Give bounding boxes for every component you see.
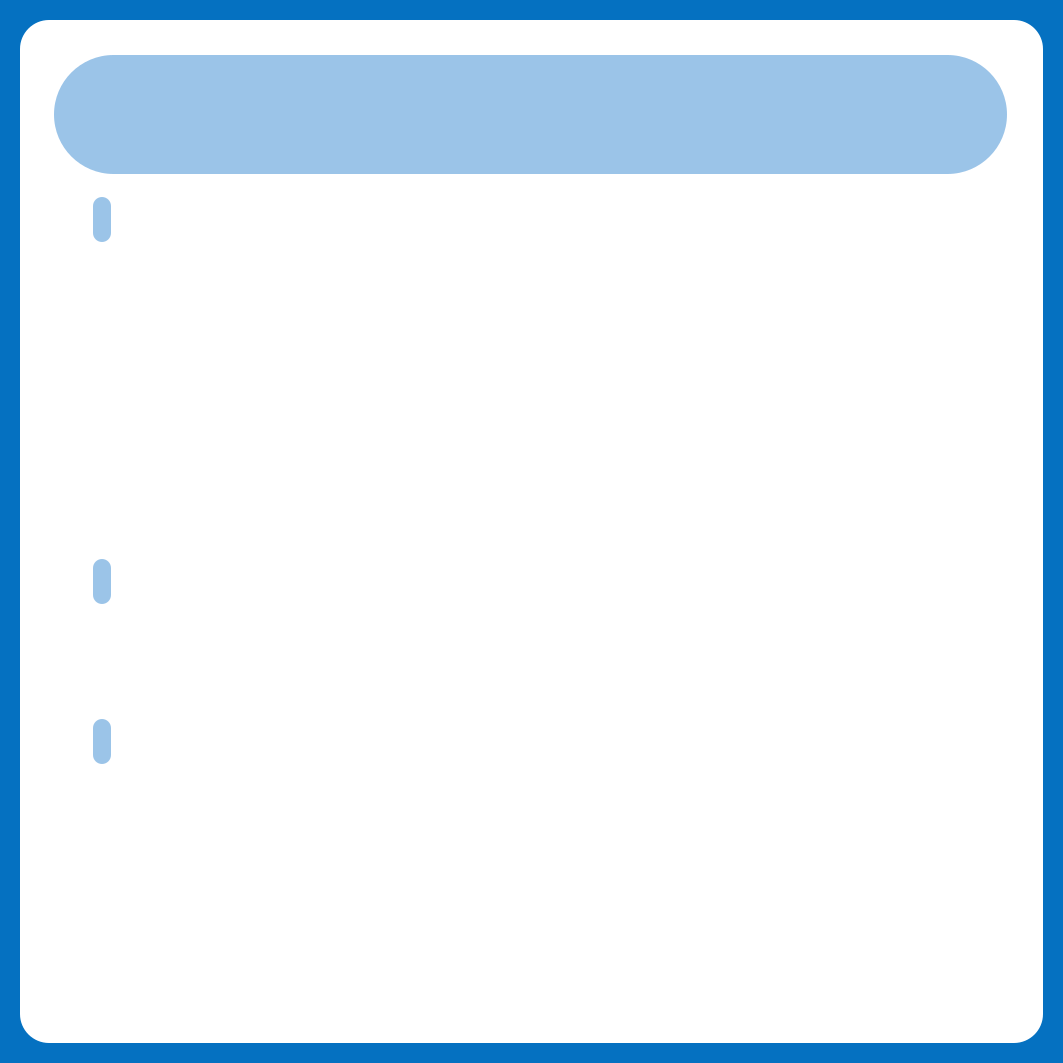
button[interactable]: Loading list row xyxy=(93,559,568,604)
button[interactable]: Loading list row xyxy=(93,197,568,242)
button[interactable]: Search xyxy=(54,55,1007,174)
button[interactable]: Loading list row xyxy=(93,719,568,764)
